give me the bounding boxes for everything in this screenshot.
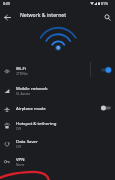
staticText: VPN xyxy=(16,156,25,162)
button[interactable]: Airplane mode xyxy=(0,100,115,116)
staticText: XL Axiata xyxy=(16,91,31,95)
button[interactable] xyxy=(89,60,115,79)
staticText: Data Saver xyxy=(16,138,38,144)
button[interactable]: Hotspot & tethering xyxy=(0,117,115,133)
button[interactable]: Back xyxy=(0,10,15,25)
staticText: Mobile network xyxy=(16,85,48,91)
staticText: 2TDNet xyxy=(16,71,28,75)
staticText: None xyxy=(16,162,25,166)
staticText: Off xyxy=(16,144,21,148)
button[interactable] xyxy=(89,100,115,116)
staticText: Airplane mode xyxy=(16,105,46,111)
button[interactable]: Mobile network xyxy=(0,80,115,99)
button[interactable]: VPN xyxy=(0,153,115,169)
staticText: Network & internet xyxy=(20,12,67,19)
button[interactable]: Wi-Fi xyxy=(0,60,115,79)
button[interactable]: Search xyxy=(100,10,115,25)
staticText: Off xyxy=(16,126,21,130)
button[interactable]: Data Saver xyxy=(0,135,115,151)
staticText: 8:00 xyxy=(3,1,11,6)
staticText: Hotspot & tethering xyxy=(16,120,57,126)
staticText: 81% xyxy=(101,1,109,6)
staticText: Wi-Fi xyxy=(16,65,26,71)
